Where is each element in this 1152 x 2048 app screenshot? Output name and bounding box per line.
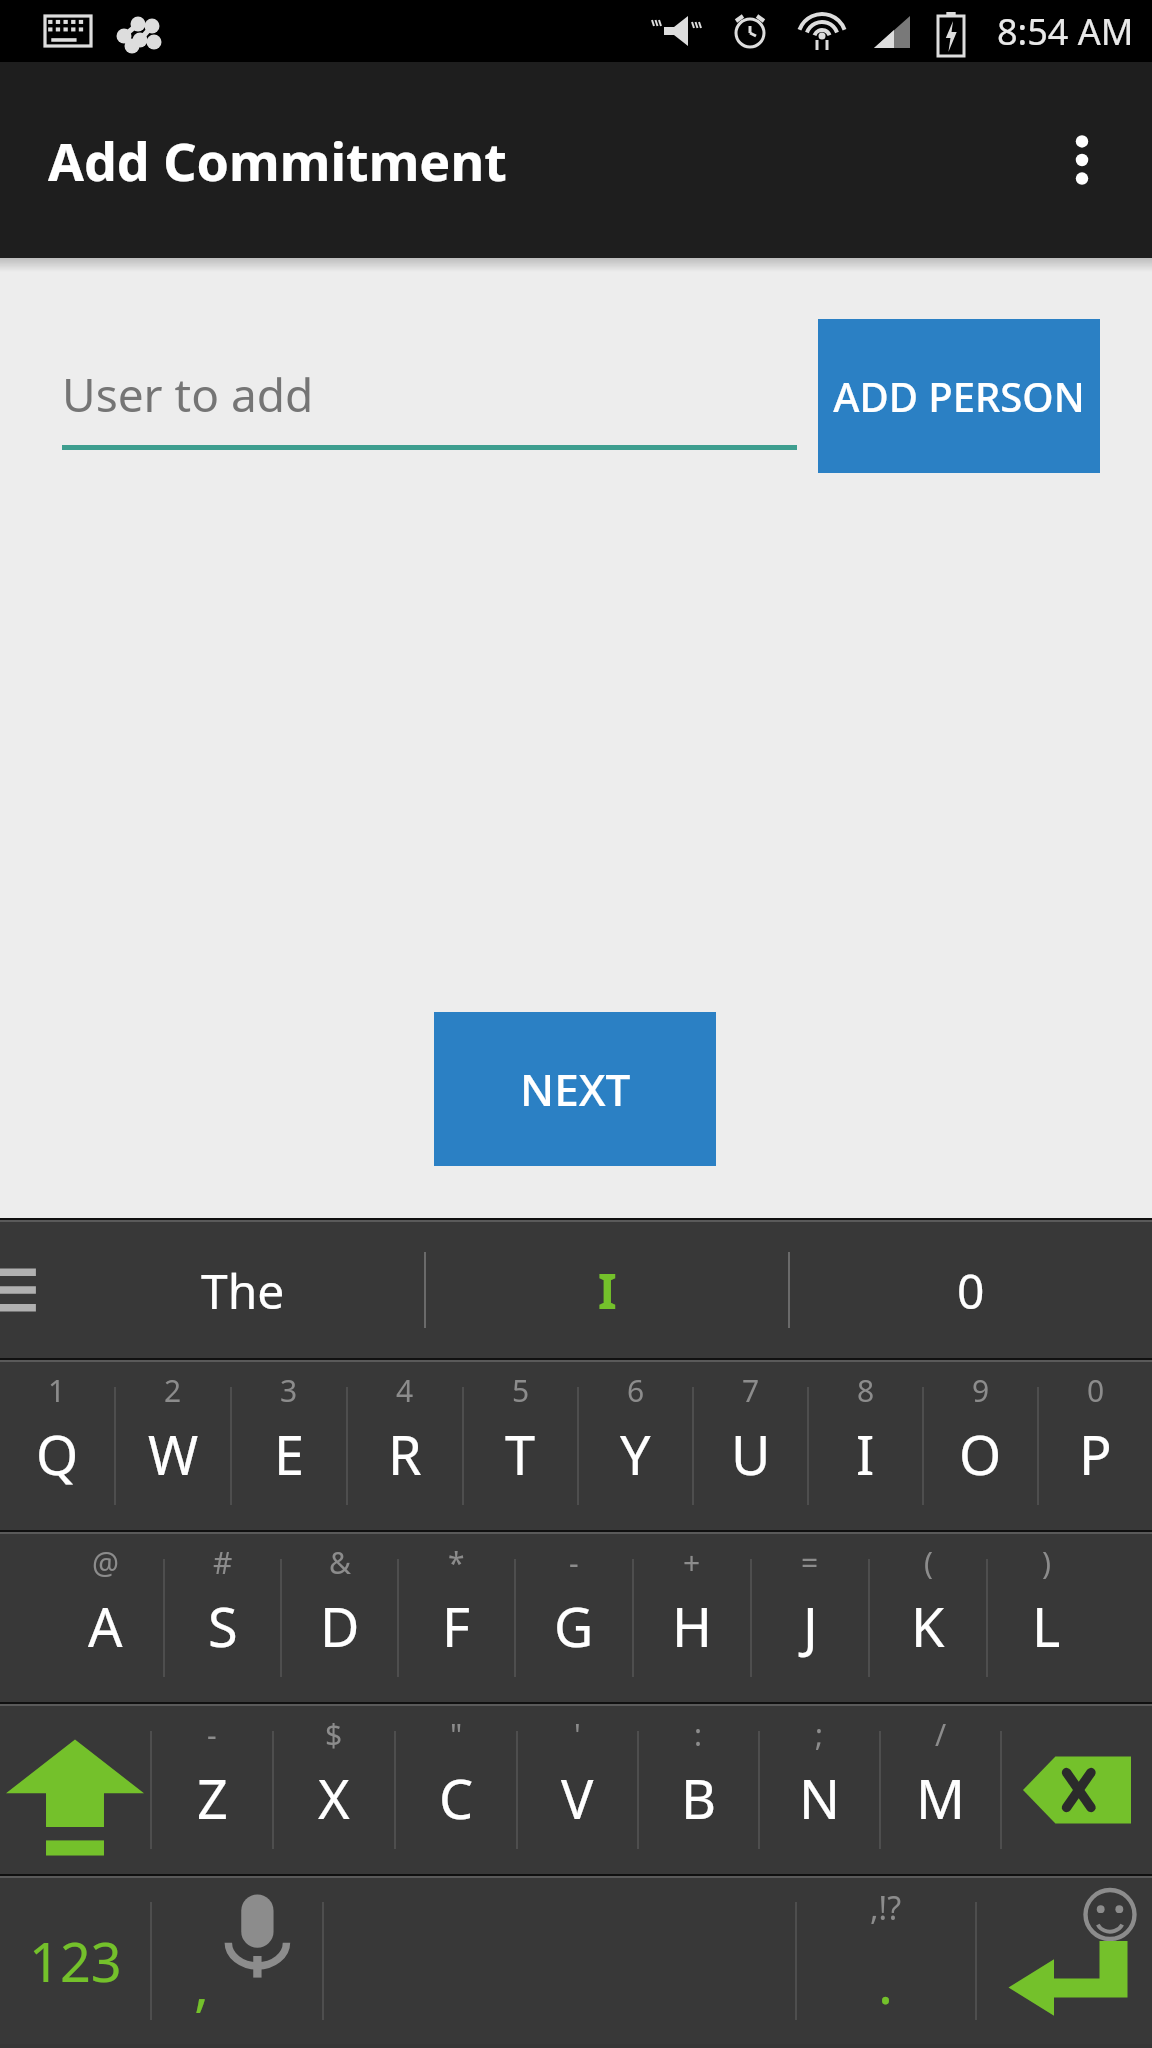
staticText: C: [439, 1761, 474, 1835]
staticText: V: [561, 1761, 594, 1835]
staticText: +: [683, 1542, 701, 1583]
staticText: K: [911, 1589, 945, 1663]
button[interactable]: I: [426, 1222, 788, 1358]
staticText: User to add: [62, 363, 314, 426]
staticText: ADD PERSON: [833, 369, 1085, 423]
staticText: ": [450, 1714, 463, 1755]
staticText: E: [274, 1417, 305, 1491]
staticText: Add Commitment: [48, 125, 507, 196]
button[interactable]: ADD PERSON: [818, 319, 1100, 473]
staticText: Y: [620, 1417, 651, 1491]
staticText: The: [201, 1258, 285, 1323]
staticText: X: [318, 1761, 350, 1835]
button[interactable]: =: [752, 1534, 868, 1702]
button[interactable]: Backspace: [1002, 1706, 1152, 1874]
staticText: 1: [48, 1370, 66, 1411]
staticText: @: [92, 1542, 119, 1583]
button[interactable]: 8: [809, 1362, 922, 1530]
button[interactable]: Period: [797, 1878, 975, 2044]
staticText: B: [681, 1761, 717, 1835]
button[interactable]: Suggestions menu: [0, 1222, 62, 1358]
staticText: 4: [396, 1370, 414, 1411]
staticText: 5: [512, 1370, 530, 1411]
staticText: ,!?: [870, 1886, 902, 1930]
button[interactable]: ": [396, 1706, 516, 1874]
staticText: A: [88, 1589, 123, 1663]
button[interactable]: $: [274, 1706, 394, 1874]
staticText: J: [803, 1589, 818, 1663]
staticText: 8:54 AM: [997, 7, 1134, 56]
staticText: R: [388, 1417, 422, 1491]
staticText: :: [694, 1714, 703, 1755]
staticText: T: [505, 1417, 536, 1491]
staticText: Q: [36, 1417, 79, 1491]
staticText: 7: [742, 1370, 760, 1411]
button[interactable]: ': [518, 1706, 637, 1874]
button[interactable]: Comma and voice input: [152, 1878, 322, 2044]
staticText: I: [598, 1258, 617, 1323]
staticText: ): [1042, 1542, 1051, 1583]
button[interactable]: Shift: [0, 1706, 150, 1874]
staticText: W: [148, 1417, 199, 1491]
button[interactable]: More options: [1034, 100, 1130, 220]
staticText: H: [672, 1589, 713, 1663]
staticText: 0: [957, 1258, 985, 1323]
button[interactable]: User to add: [62, 338, 797, 450]
button[interactable]: ;: [760, 1706, 879, 1874]
button[interactable]: 3: [232, 1362, 346, 1530]
staticText: O: [959, 1417, 1002, 1491]
staticText: *: [448, 1542, 465, 1583]
staticText: Z: [197, 1761, 228, 1835]
staticText: 9: [972, 1370, 990, 1411]
button[interactable]: -: [516, 1534, 632, 1702]
button[interactable]: 9: [924, 1362, 1037, 1530]
button[interactable]: 2: [116, 1362, 230, 1530]
staticText: I: [856, 1417, 875, 1491]
staticText: P: [1079, 1417, 1112, 1491]
button[interactable]: 4: [348, 1362, 462, 1530]
staticText: N: [799, 1761, 841, 1835]
staticText: L: [1032, 1589, 1061, 1663]
staticText: F: [442, 1589, 471, 1663]
staticText: ,: [194, 1946, 210, 2022]
button[interactable]: @: [48, 1534, 163, 1702]
staticText: 8: [857, 1370, 875, 1411]
button[interactable]: :: [639, 1706, 758, 1874]
staticText: =: [801, 1542, 819, 1583]
staticText: $: [325, 1714, 343, 1755]
button[interactable]: -: [152, 1706, 272, 1874]
button[interactable]: /: [881, 1706, 1000, 1874]
button[interactable]: 0: [790, 1222, 1152, 1358]
staticText: ': [574, 1714, 581, 1755]
button[interactable]: (: [870, 1534, 986, 1702]
staticText: 2: [164, 1370, 182, 1411]
staticText: /: [935, 1714, 947, 1755]
button[interactable]: ): [988, 1534, 1104, 1702]
staticText: -: [207, 1714, 217, 1755]
button[interactable]: Enter: [977, 1878, 1152, 2044]
button[interactable]: 6: [579, 1362, 692, 1530]
button[interactable]: *: [399, 1534, 514, 1702]
button[interactable]: 123: [0, 1878, 150, 2044]
button[interactable]: +: [634, 1534, 750, 1702]
staticText: ;: [815, 1714, 824, 1755]
staticText: 0: [1087, 1370, 1105, 1411]
button[interactable]: NEXT: [434, 1012, 716, 1166]
staticText: D: [320, 1589, 360, 1663]
button[interactable]: The: [62, 1222, 424, 1358]
button[interactable]: #: [165, 1534, 280, 1702]
staticText: (: [924, 1542, 933, 1583]
button[interactable]: 5: [464, 1362, 577, 1530]
button[interactable]: &: [282, 1534, 397, 1702]
button[interactable]: 0: [1039, 1362, 1152, 1530]
staticText: S: [208, 1589, 238, 1663]
staticText: -: [569, 1542, 579, 1583]
button[interactable]: 7: [694, 1362, 807, 1530]
button[interactable]: 1: [0, 1362, 114, 1530]
staticText: M: [916, 1761, 965, 1835]
staticText: G: [554, 1589, 594, 1663]
staticText: 6: [627, 1370, 645, 1411]
staticText: 3: [280, 1370, 298, 1411]
staticText: &: [329, 1542, 351, 1583]
